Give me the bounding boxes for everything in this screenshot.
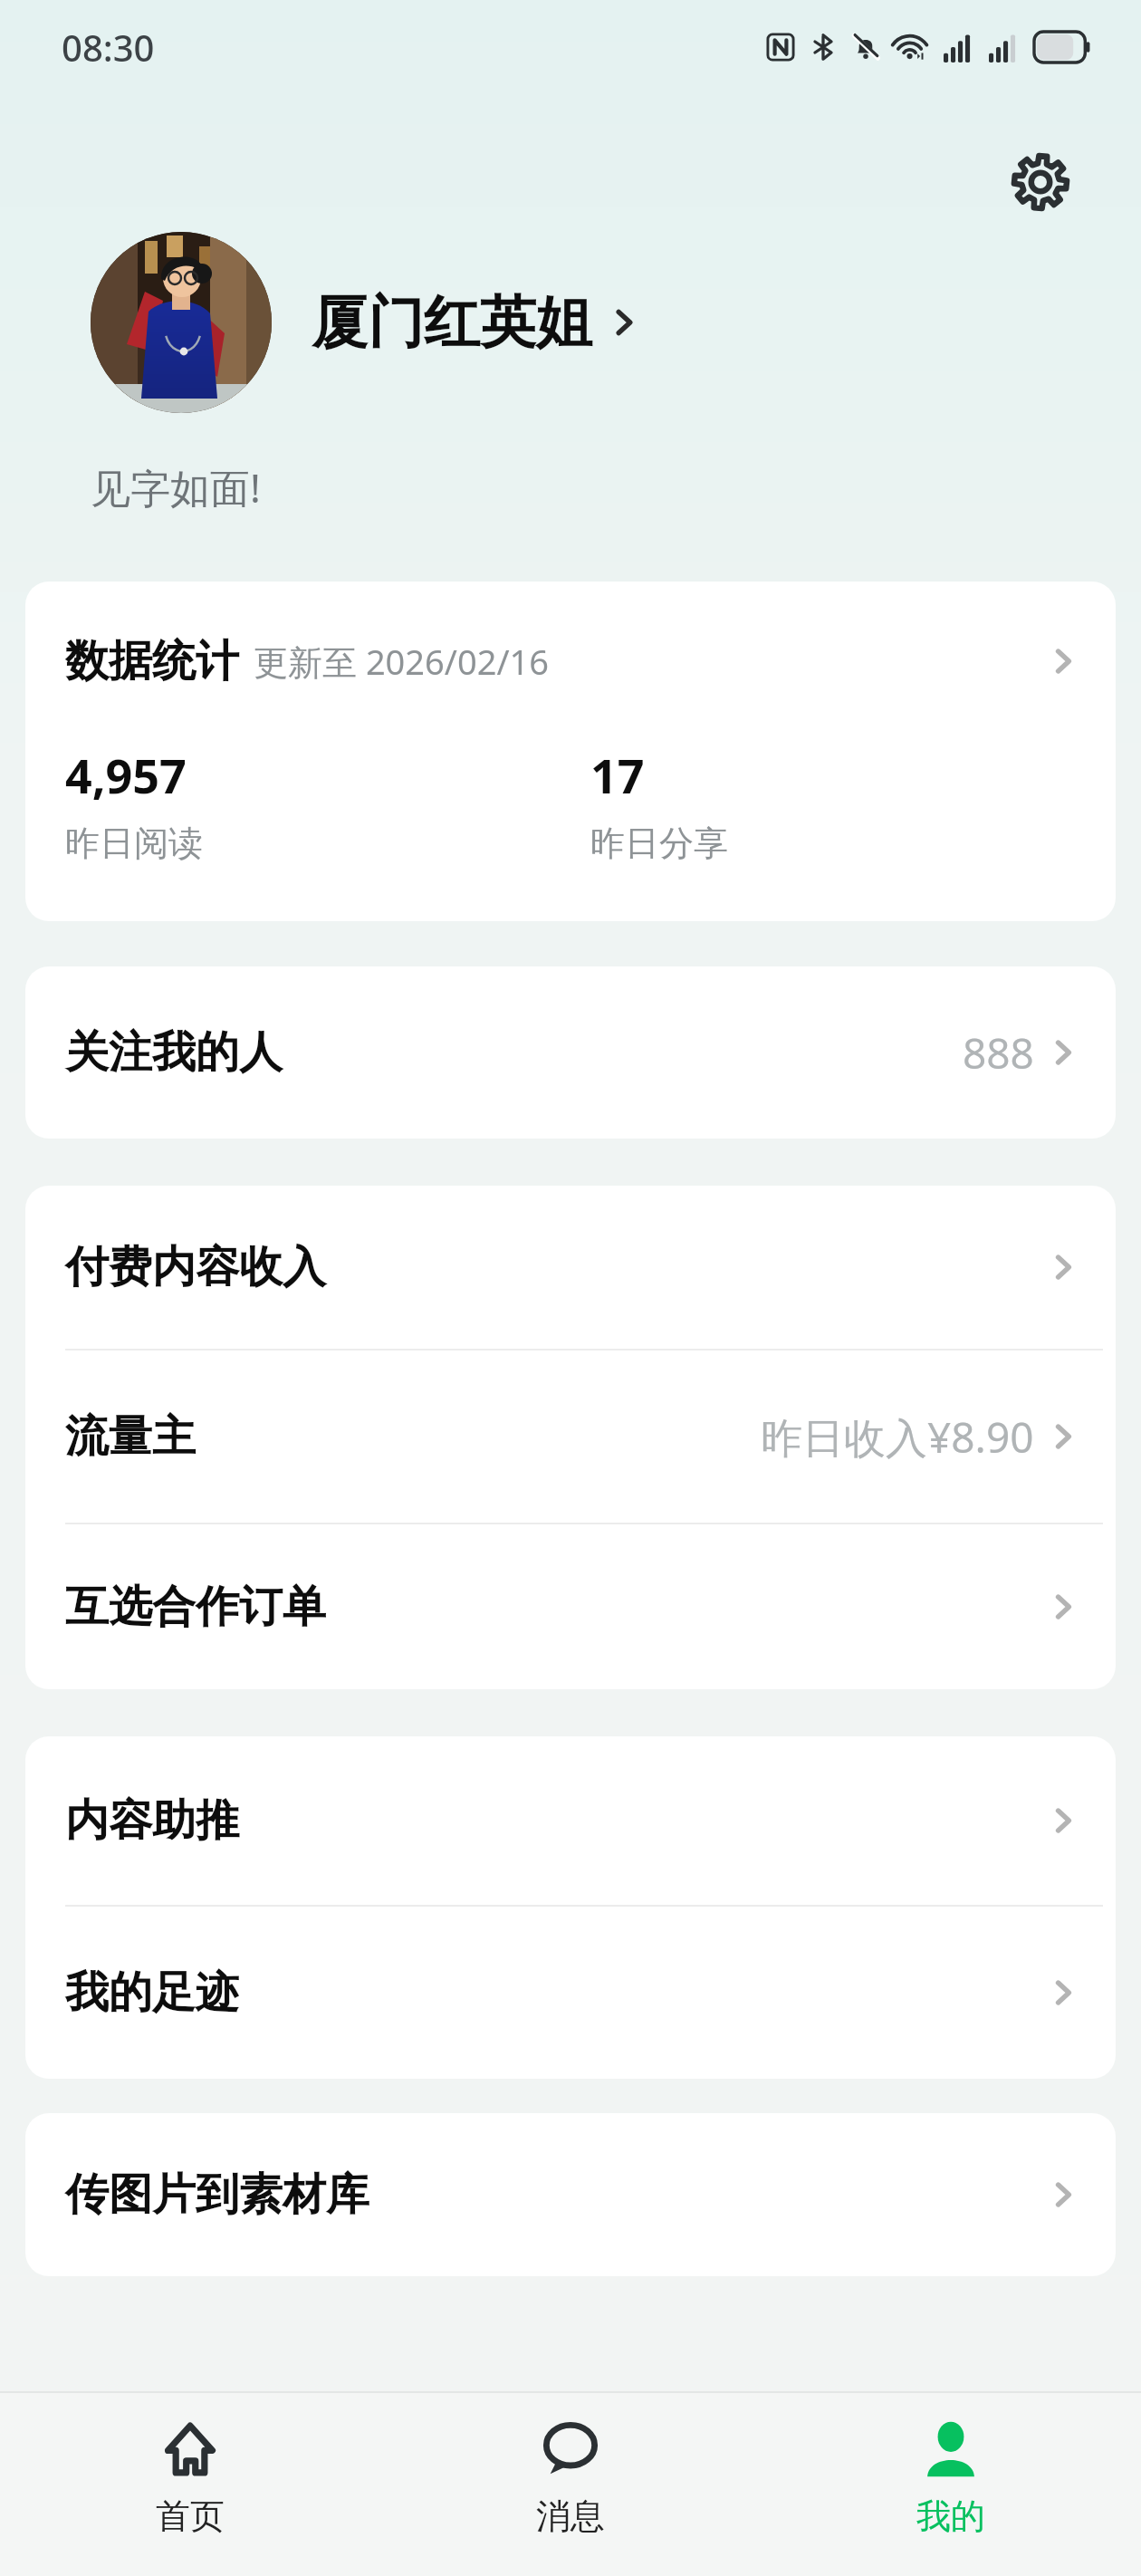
button[interactable]: 数据统计 — [25, 582, 1116, 703]
staticText: 08:30 — [62, 23, 155, 72]
staticText: 消息 — [536, 2494, 605, 2538]
button[interactable]: 首页 — [0, 2393, 380, 2576]
staticText: 昨日收入¥8.90 — [761, 1408, 1034, 1466]
button[interactable]: 内容助推 — [25, 1736, 1116, 1905]
staticText: 见字如面! — [91, 460, 261, 514]
staticText: 传图片到素材库 — [65, 2167, 369, 2222]
staticText: 互选合作订单 — [65, 1580, 326, 1634]
button[interactable]: 我的 — [761, 2393, 1141, 2576]
staticText: 17 — [590, 743, 645, 807]
button[interactable]: 关注我的人 — [25, 966, 1116, 1139]
staticText: 厦门红英姐 — [312, 287, 592, 358]
staticText: 首页 — [156, 2494, 225, 2538]
button[interactable]: 厦门红英姐 — [91, 232, 1087, 413]
button[interactable]: 传图片到素材库 — [25, 2113, 1116, 2276]
button[interactable]: 付费内容收入 — [25, 1186, 1116, 1349]
staticText: 关注我的人 — [65, 1025, 283, 1080]
button[interactable]: 流量主 — [25, 1350, 1116, 1523]
staticText: 内容助推 — [65, 1793, 239, 1848]
staticText: 更新至 2026/02/16 — [254, 638, 550, 685]
staticText: 流量主 — [65, 1409, 196, 1464]
button[interactable]: 我的足迹 — [25, 1907, 1116, 2079]
staticText: 数据统计 — [65, 634, 239, 688]
staticText: 昨日分享 — [590, 822, 728, 865]
button[interactable]: Settings — [1005, 147, 1076, 217]
staticText: 我的足迹 — [65, 1966, 239, 2020]
staticText: 昨日阅读 — [65, 822, 203, 865]
button[interactable]: 互选合作订单 — [25, 1524, 1116, 1689]
button[interactable]: 消息 — [380, 2393, 761, 2576]
staticText: 888 — [963, 1024, 1034, 1081]
staticText: 4,957 — [65, 743, 187, 807]
staticText: 付费内容收入 — [65, 1240, 326, 1294]
staticText: 我的 — [916, 2494, 985, 2538]
